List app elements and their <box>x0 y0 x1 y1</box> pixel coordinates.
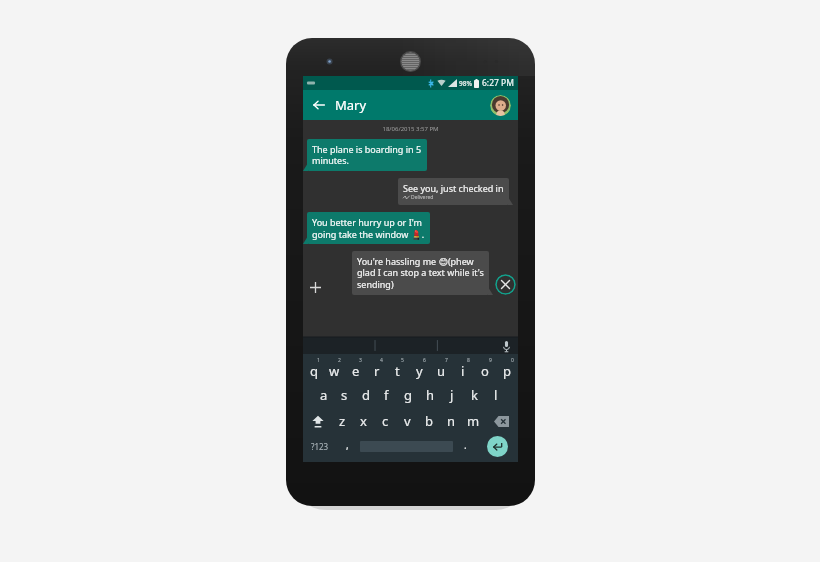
staticText: t <box>395 362 400 380</box>
button[interactable]: 0 <box>496 356 518 382</box>
button[interactable]: Back <box>310 96 328 114</box>
button[interactable]: 1 <box>303 356 324 382</box>
staticText: The plane is boarding in 5 minutes. <box>312 143 422 167</box>
button[interactable]: 8 <box>452 356 474 382</box>
staticText: 3 <box>359 357 362 364</box>
button[interactable]: m <box>462 408 484 434</box>
staticText: l <box>494 386 498 404</box>
button[interactable]: 2 <box>324 356 345 382</box>
staticText: j <box>450 386 454 404</box>
staticText: See you, just checked in <box>403 182 504 194</box>
staticText: 1 <box>317 357 320 364</box>
button[interactable]: Shift <box>303 408 332 434</box>
staticText: b <box>425 412 433 430</box>
staticText: 2 <box>338 357 341 364</box>
button[interactable]: Enter <box>487 436 508 457</box>
button[interactable]: The plane is boarding in 5 minutes. <box>307 139 427 171</box>
button[interactable]: 3 <box>345 356 366 382</box>
staticText: 18/06/2015 3:57 PM <box>303 125 518 133</box>
button[interactable]: g <box>397 382 419 408</box>
button[interactable]: d <box>355 382 376 408</box>
button[interactable]: v <box>396 408 418 434</box>
staticText: d <box>362 386 370 404</box>
staticText: 9 <box>489 357 492 364</box>
staticText: 0 <box>511 357 514 364</box>
button[interactable]: l <box>485 382 507 408</box>
staticText: 4 <box>380 357 383 364</box>
button[interactable]: f <box>376 382 397 408</box>
staticText: , <box>346 438 349 452</box>
staticText: 98% <box>459 79 472 88</box>
staticText: 6:27 PM <box>482 77 514 89</box>
button[interactable]: Attach <box>307 279 323 295</box>
staticText: u <box>437 362 446 380</box>
button[interactable]: . <box>455 434 476 459</box>
staticText: a <box>320 386 328 404</box>
button[interactable]: s <box>334 382 355 408</box>
staticText: c <box>382 412 389 430</box>
button[interactable]: You better hurry up or I'm going take th… <box>307 212 430 244</box>
staticText: e <box>352 362 360 380</box>
button[interactable]: Voice input <box>499 339 513 353</box>
staticText: Mary <box>335 96 490 114</box>
button[interactable]: h <box>419 382 441 408</box>
button[interactable]: Delete <box>484 408 518 434</box>
staticText: f <box>384 386 389 404</box>
staticText: i <box>461 362 465 380</box>
staticText: x <box>360 412 367 430</box>
staticText: 8 <box>467 357 470 364</box>
staticText: s <box>341 386 348 404</box>
staticText: n <box>447 412 456 430</box>
staticText: r <box>374 362 380 380</box>
staticText: Delivered <box>411 194 434 201</box>
staticText: y <box>416 362 423 380</box>
staticText: 7 <box>445 357 448 364</box>
button[interactable]: n <box>440 408 462 434</box>
button[interactable]: See you, just checked in <box>398 178 509 205</box>
button[interactable]: 7 <box>430 356 452 382</box>
button[interactable]: k <box>463 382 485 408</box>
button[interactable]: 4 <box>366 356 387 382</box>
button[interactable]: Contact photo <box>490 95 511 116</box>
staticText: z <box>339 412 346 430</box>
staticText: k <box>471 386 478 404</box>
button[interactable]: a <box>313 382 334 408</box>
staticText: 5 <box>401 357 404 364</box>
button[interactable]: 6 <box>408 356 430 382</box>
button[interactable]: z <box>332 408 353 434</box>
staticText: . <box>464 438 467 452</box>
staticText: g <box>404 386 412 404</box>
staticText: 6 <box>423 357 426 364</box>
button[interactable]: ?123 <box>303 434 337 459</box>
button[interactable]: x <box>353 408 374 434</box>
button[interactable]: , <box>337 434 358 459</box>
staticText: ?123 <box>311 441 329 452</box>
button[interactable]: 9 <box>474 356 496 382</box>
button[interactable]: c <box>374 408 396 434</box>
staticText: q <box>310 362 318 380</box>
staticText: p <box>503 362 511 380</box>
button[interactable]: You're hassling me 😊(phew glad I can sto… <box>352 251 489 295</box>
button[interactable]: b <box>418 408 440 434</box>
button[interactable]: Cancel sending <box>495 274 516 295</box>
staticText: v <box>404 412 411 430</box>
staticText: w <box>329 362 340 380</box>
staticText: You better hurry up or I'm going take th… <box>312 216 425 240</box>
staticText: You're hassling me 😊(phew glad I can sto… <box>357 255 484 291</box>
button[interactable]: j <box>441 382 463 408</box>
staticText: m <box>467 412 480 430</box>
staticText: h <box>426 386 435 404</box>
staticText: o <box>481 362 489 380</box>
button[interactable]: 5 <box>387 356 408 382</box>
